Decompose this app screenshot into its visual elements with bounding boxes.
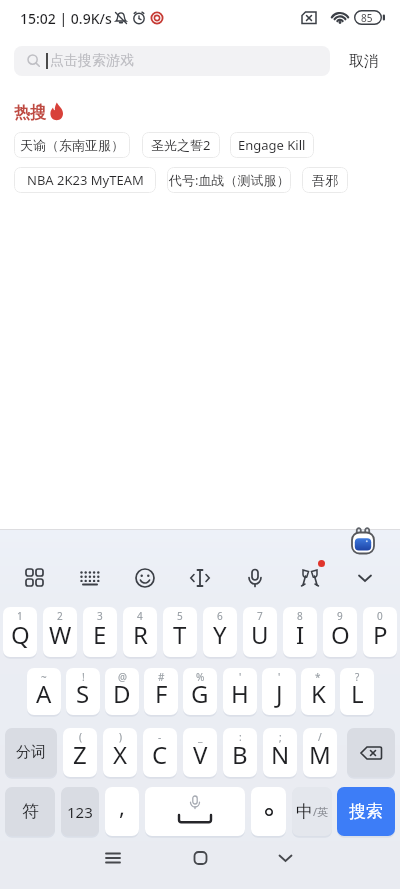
staticText: 分词 [16,743,46,762]
staticText: 搜索 [349,801,383,822]
button[interactable] [251,787,286,836]
button[interactable] [187,565,213,591]
button[interactable]: 7 [243,607,277,657]
button[interactable]: 0 [363,607,397,657]
button[interactable]: 6 [203,607,237,657]
button[interactable]: 取消 [340,48,388,74]
staticText: / [318,730,322,744]
button[interactable]: * [301,668,335,715]
button[interactable] [22,565,48,591]
button[interactable]: ' [262,668,296,715]
staticText: L [351,677,364,710]
staticText: X [113,738,128,771]
button[interactable] [145,787,245,836]
button[interactable]: 代号:血战（测试服） [167,167,291,193]
staticText: N [271,738,290,771]
staticText: Q [11,618,30,651]
button[interactable] [132,565,158,591]
staticText: 取消 [349,52,379,71]
staticText: 符 [22,801,39,822]
button[interactable] [297,565,323,591]
button[interactable]: ; [263,728,297,777]
staticText: 点击搜索游戏 [50,52,134,70]
staticText: 天谕（东南亚服） [20,137,124,153]
button[interactable]: 符 [5,787,55,836]
staticText: D [113,677,131,710]
button[interactable] [96,842,130,874]
button[interactable]: ( [63,728,97,777]
staticText: /英 [313,804,329,819]
staticText: , [119,791,125,821]
button[interactable]: @ [105,668,139,715]
button[interactable] [269,842,301,874]
staticText: : [239,730,242,744]
button[interactable]: 中 [292,787,332,836]
staticText: A [36,677,52,710]
staticText: B [232,738,248,771]
button[interactable]: / [303,728,337,777]
button[interactable]: 2 [43,607,77,657]
staticText: 7 [257,609,263,623]
button[interactable] [77,565,103,591]
staticText: E [93,618,107,651]
staticText: 0 [377,609,383,623]
staticText: 123 [67,802,93,822]
button[interactable]: 搜索 [337,787,395,836]
staticText: ' [278,670,281,684]
staticText: 85 [361,11,373,25]
staticText: ! [82,670,85,684]
button[interactable]: 3 [83,607,117,657]
staticText: 吾邪 [312,172,338,188]
staticText: ' [239,670,242,684]
button[interactable]: 4 [123,607,157,657]
button[interactable]: ' [223,668,257,715]
button[interactable]: # [144,668,178,715]
staticText: ~ [41,670,47,684]
staticText: 9 [337,609,343,623]
button[interactable]: % [183,668,217,715]
staticText: % [196,670,205,684]
button[interactable]: 123 [61,787,99,836]
button[interactable]: ) [103,728,137,777]
staticText: 15:02 | 0.9K/s [20,9,112,28]
staticText: _ [198,730,203,744]
button[interactable]: ! [66,668,100,715]
staticText: - [158,730,162,744]
button[interactable] [352,565,378,591]
button[interactable]: ~ [27,668,61,715]
button[interactable]: - [143,728,177,777]
button[interactable] [185,842,217,874]
staticText: M [309,738,331,771]
button[interactable]: 天谕（东南亚服） [14,132,130,158]
button[interactable]: : [223,728,257,777]
button[interactable]: ? [340,668,374,715]
staticText: ? [355,670,360,684]
button[interactable]: 8 [283,607,317,657]
button[interactable]: 圣光之誓2 [142,132,220,158]
button[interactable]: _ [183,728,217,777]
staticText: * [315,670,321,684]
button[interactable]: Engage Kill [230,132,314,158]
button[interactable]: 分词 [5,728,57,777]
button[interactable]: 5 [163,607,197,657]
staticText: H [231,677,249,710]
button[interactable]: NBA 2K23 MyTEAM [14,167,156,193]
button[interactable]: 9 [323,607,357,657]
button[interactable]: , [105,787,139,836]
button[interactable] [347,728,395,777]
button[interactable] [242,565,268,591]
staticText: P [373,618,388,651]
button[interactable]: 吾邪 [302,167,348,193]
staticText: ; [279,730,282,744]
button[interactable]: 1 [3,607,37,657]
staticText: Z [73,738,87,771]
staticText: NBA 2K23 MyTEAM [27,171,144,189]
staticText: 3 [97,609,103,623]
staticText: Engage Kill [238,136,306,154]
staticText: @ [118,670,127,684]
staticText: 1 [17,609,23,623]
staticText: S [76,677,90,710]
button[interactable]: 点击搜索游戏 [14,46,330,76]
staticText: U [251,618,269,651]
staticText: Y [213,618,227,651]
